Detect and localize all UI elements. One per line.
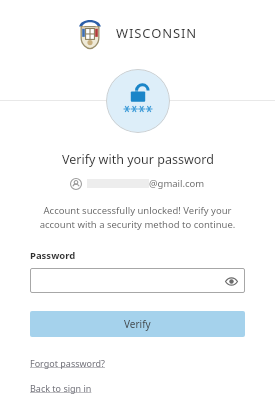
staticText: WISCONSIN [116, 24, 198, 42]
button[interactable]: Forgot password? [30, 357, 106, 369]
staticText: Account successfully unlocked! Verify yo… [28, 204, 247, 231]
staticText: Password [30, 249, 76, 262]
staticText: Back to sign in [30, 382, 92, 394]
button[interactable]: Show password [30, 268, 245, 293]
staticText: Verify with your password [62, 151, 214, 168]
staticText: Verify [124, 317, 151, 331]
staticText: @gmail.com [149, 177, 205, 190]
staticText: Forgot password? [30, 357, 106, 369]
button[interactable]: Show password [223, 273, 239, 289]
button[interactable]: Back to sign in [30, 382, 92, 394]
button[interactable]: Verify [30, 311, 245, 337]
